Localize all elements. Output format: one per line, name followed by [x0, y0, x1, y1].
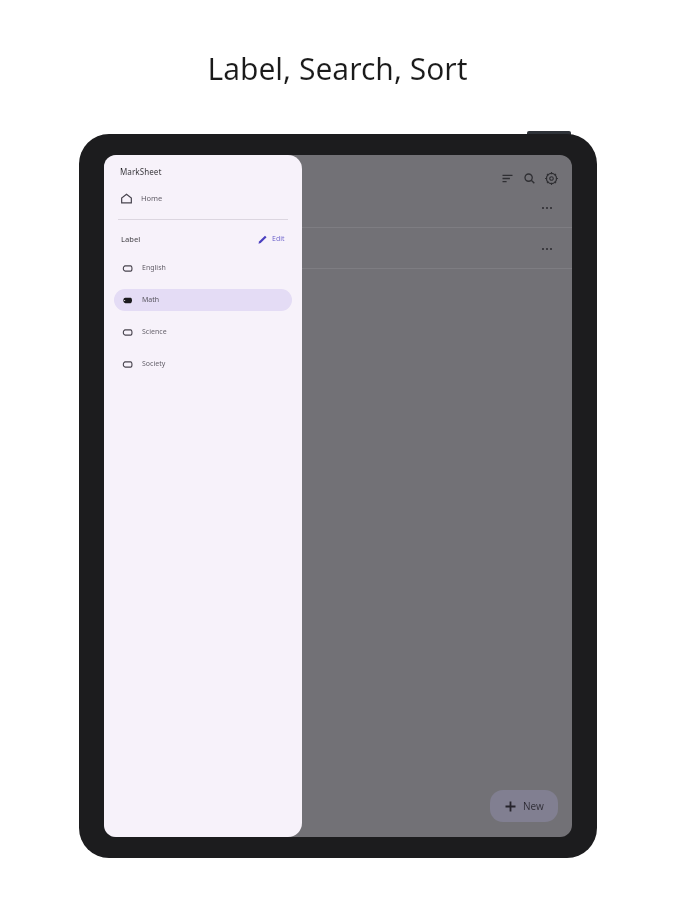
button[interactable]: Edit: [255, 231, 288, 247]
button[interactable]: English: [114, 257, 292, 279]
button[interactable]: Home: [114, 186, 292, 210]
button[interactable]: Sort: [496, 167, 518, 189]
staticText: Label: [121, 234, 141, 244]
button[interactable]: Society: [114, 353, 292, 375]
button[interactable]: Math: [114, 289, 292, 311]
button[interactable]: More options: [538, 244, 556, 254]
staticText: MarkSheet: [120, 166, 162, 177]
button[interactable]: Settings: [540, 167, 562, 189]
staticText: Society: [142, 359, 166, 369]
staticText: Science: [142, 327, 167, 337]
button[interactable]: New: [490, 790, 558, 822]
button[interactable]: More options: [538, 203, 556, 213]
staticText: New: [523, 799, 544, 813]
staticText: English: [142, 263, 166, 273]
staticText: Label, Search, Sort: [207, 48, 468, 89]
button[interactable]: Search: [518, 167, 540, 189]
staticText: Edit: [272, 234, 285, 244]
button[interactable]: Science: [114, 321, 292, 343]
staticText: Home: [141, 193, 163, 203]
staticText: Math: [142, 295, 160, 305]
